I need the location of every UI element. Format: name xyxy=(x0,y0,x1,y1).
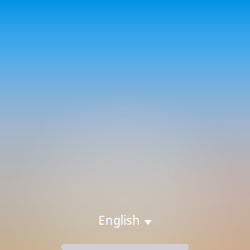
staticText: English xyxy=(98,212,140,228)
button[interactable]: English xyxy=(90,209,160,231)
